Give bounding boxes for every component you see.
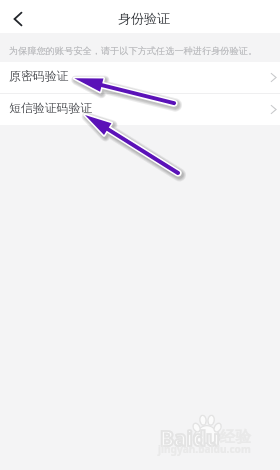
staticText: 短信验证码验证 xyxy=(9,101,93,116)
button[interactable]: 原密码验证 xyxy=(0,62,280,93)
staticText: 原密码验证 xyxy=(9,69,69,84)
staticText: Baidu xyxy=(160,424,220,453)
button[interactable]: 短信验证码验证 xyxy=(0,94,280,125)
staticText: Baidu xyxy=(160,424,220,453)
button[interactable]: Back xyxy=(0,0,33,33)
staticText: jingyan.baidu.com xyxy=(158,442,251,456)
staticText: 为保障您的账号安全，请于以下方式任选一种进行身份验证。 xyxy=(9,45,258,57)
staticText: 经验 xyxy=(220,427,251,447)
staticText: 身份验证 xyxy=(118,10,170,26)
